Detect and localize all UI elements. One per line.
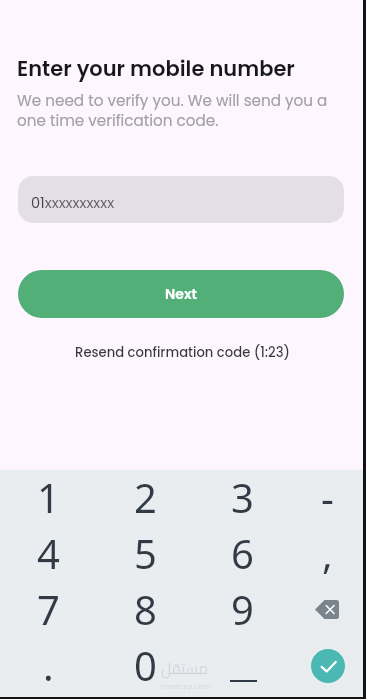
staticText: 8 — [134, 582, 157, 636]
staticText: Enter your mobile number — [17, 54, 295, 83]
button[interactable]: Space — [194, 637, 291, 693]
staticText: 01xxxxxxxxxx — [31, 193, 115, 213]
staticText: 3 — [231, 470, 254, 524]
staticText: , — [322, 526, 333, 580]
staticText: 4 — [37, 526, 60, 580]
button[interactable]: 0 — [97, 637, 194, 693]
button[interactable]: Space — [218, 645, 268, 685]
staticText: 1 — [37, 470, 60, 524]
staticText: - — [321, 470, 334, 524]
button[interactable]: 9 — [194, 581, 291, 637]
button[interactable]: 7 — [0, 581, 97, 637]
button[interactable]: Confirm — [311, 649, 345, 683]
button[interactable]: 4 — [0, 525, 97, 581]
button[interactable]: 8 — [97, 581, 194, 637]
staticText: 0 — [134, 638, 157, 692]
staticText: 9 — [231, 582, 254, 636]
staticText: mostaql.com — [161, 681, 211, 691]
button[interactable]: 5 — [97, 525, 194, 581]
button[interactable]: 3 — [194, 468, 291, 525]
button[interactable]: Confirm — [291, 637, 363, 693]
button[interactable]: 2 — [97, 468, 194, 525]
staticText: 2 — [134, 470, 157, 524]
button[interactable]: . — [0, 637, 97, 693]
button[interactable]: , — [291, 525, 363, 581]
button[interactable]: 1 — [0, 468, 97, 525]
button[interactable]: 6 — [194, 525, 291, 581]
staticText: 7 — [37, 582, 60, 636]
staticText: We need to verify you. We will send you … — [17, 90, 328, 131]
staticText: . — [43, 638, 54, 692]
button[interactable]: Resend confirmation code (1:23) — [75, 343, 290, 361]
staticText: 5 — [134, 526, 157, 580]
staticText: Next — [165, 284, 197, 304]
staticText: 6 — [231, 526, 254, 580]
button[interactable]: 01xxxxxxxxxx — [18, 176, 344, 223]
button[interactable]: Next — [18, 270, 344, 318]
button[interactable]: Backspace — [291, 581, 363, 637]
staticText: مستقل — [161, 654, 209, 682]
button[interactable]: - — [291, 468, 363, 525]
button[interactable]: Backspace — [305, 592, 349, 626]
